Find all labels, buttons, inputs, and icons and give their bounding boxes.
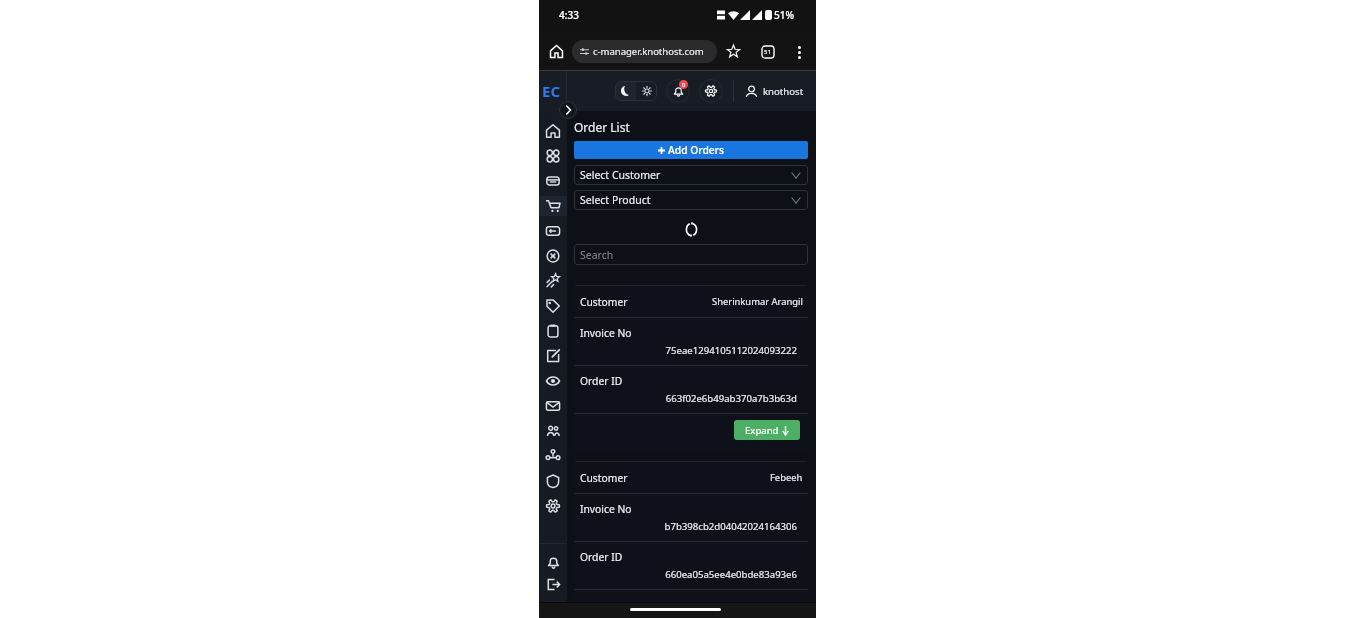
button[interactable]: More options (788, 41, 810, 63)
staticText: b7b398cb2d04042024164306 (580, 520, 797, 533)
staticText: Invoice No (580, 326, 632, 340)
button[interactable]: Search (574, 244, 808, 265)
button[interactable]: Refresh (681, 221, 701, 238)
button[interactable]: Store (539, 168, 567, 193)
staticText: 4:33 (559, 8, 579, 22)
staticText: Sherinkumar Arangil (712, 295, 803, 308)
button[interactable]: Dashboard (539, 143, 567, 168)
button[interactable]: Expand sidebar (559, 101, 577, 119)
staticText: Add Orders (668, 143, 725, 157)
button[interactable]: Team (539, 443, 567, 468)
button[interactable]: Toggle dark mode (615, 81, 657, 101)
button[interactable]: Add Orders (574, 141, 808, 159)
button[interactable]: Edit (539, 343, 567, 368)
staticText: Order List (574, 119, 630, 135)
button[interactable]: Mail (539, 393, 567, 418)
button[interactable]: Settings (539, 493, 567, 518)
button[interactable]: Expand (734, 420, 800, 440)
staticText: Febeeh (770, 471, 803, 484)
button[interactable]: Orders (539, 193, 567, 218)
button[interactable]: Security (539, 468, 567, 493)
button[interactable]: Offers (539, 268, 567, 293)
button[interactable]: c-manager.knothost.com (572, 40, 717, 63)
staticText: Expand (745, 424, 779, 437)
staticText: 51% (774, 8, 794, 22)
staticText: 663f02e6b49ab370a7b3b63d (580, 392, 797, 405)
button[interactable]: Home (539, 118, 567, 143)
staticText: Order ID (580, 374, 623, 388)
button[interactable]: Settings (699, 79, 723, 103)
button[interactable]: Notifications (539, 551, 567, 573)
button[interactable]: Home (544, 39, 569, 64)
staticText: c-manager.knothost.com (593, 45, 704, 58)
staticText: EC (542, 81, 561, 101)
button[interactable]: Cancelled (539, 243, 567, 268)
button[interactable]: Tabs (756, 40, 779, 63)
button[interactable]: View (539, 368, 567, 393)
staticText: Select Customer (580, 168, 661, 182)
staticText: Order ID (580, 550, 623, 564)
button[interactable]: Reports (539, 318, 567, 343)
staticText: Search (580, 248, 614, 262)
button[interactable]: Log out (539, 573, 567, 595)
staticText: Customer (580, 471, 628, 485)
button[interactable]: Returns (539, 218, 567, 243)
button[interactable]: Customers (539, 418, 567, 443)
staticText: Select Product (580, 193, 651, 207)
button[interactable]: Bookmark (722, 40, 745, 63)
button[interactable]: Select Customer (574, 165, 808, 185)
staticText: 660ea05a5ee4e0bde83a93e6 (580, 568, 797, 581)
button[interactable]: Select Product (574, 190, 808, 210)
staticText: Invoice No (580, 502, 632, 516)
staticText: knothost (763, 85, 804, 98)
staticText: 51 (764, 48, 771, 56)
staticText: 75eae1294105112024093222 (580, 344, 797, 357)
staticText: Customer (580, 295, 628, 309)
button[interactable]: Notifications (666, 79, 690, 103)
button[interactable]: knothost (745, 85, 804, 98)
staticText: 0 (682, 81, 686, 88)
button[interactable]: Products (539, 293, 567, 318)
